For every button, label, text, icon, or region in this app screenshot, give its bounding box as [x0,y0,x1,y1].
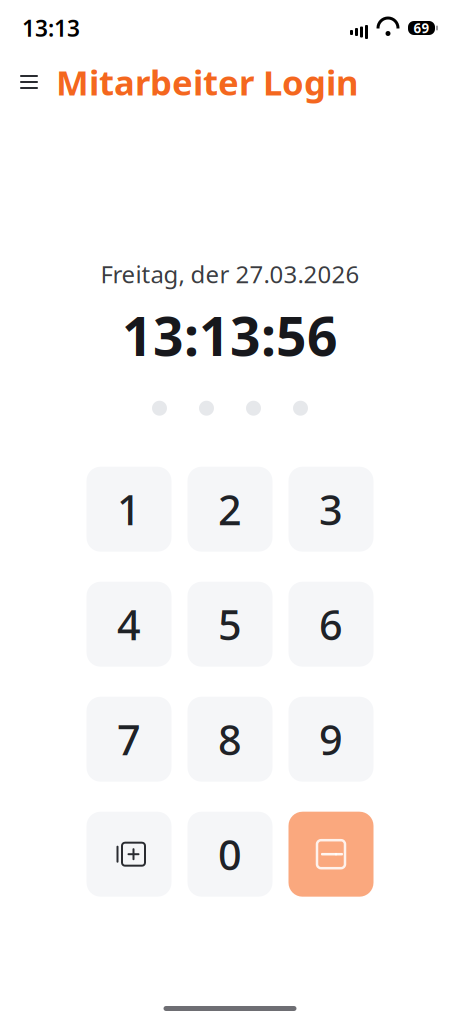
button[interactable]: 9 [288,697,373,782]
staticText: 13:13 [22,13,80,43]
button[interactable]: 8 [187,697,272,782]
button[interactable]: Delete [86,812,171,897]
staticText: 3 [319,482,343,537]
button[interactable]: 7 [86,697,171,782]
staticText: 4 [117,597,141,652]
staticText: 9 [319,712,343,767]
staticText: 69 [413,19,429,37]
button[interactable]: Login [288,812,373,897]
staticText: 6 [319,597,343,652]
staticText: 2 [218,482,242,537]
button[interactable]: Menu [12,65,46,99]
staticText: 0 [218,827,242,882]
staticText: Freitag, der 27.03.2026 [100,258,359,290]
staticText: 5 [218,597,242,652]
button[interactable]: 4 [86,582,171,667]
button[interactable]: 0 [187,812,272,897]
button[interactable]: 3 [288,467,373,552]
staticText: 1 [117,482,141,537]
button[interactable]: 5 [187,582,272,667]
staticText: 13:13:56 [122,300,338,371]
button[interactable]: 2 [187,467,272,552]
button[interactable]: 6 [288,582,373,667]
button[interactable]: 1 [86,467,171,552]
staticText: 7 [117,712,141,767]
staticText: 8 [218,712,242,767]
staticText: Mitarbeiter Login [56,59,359,105]
